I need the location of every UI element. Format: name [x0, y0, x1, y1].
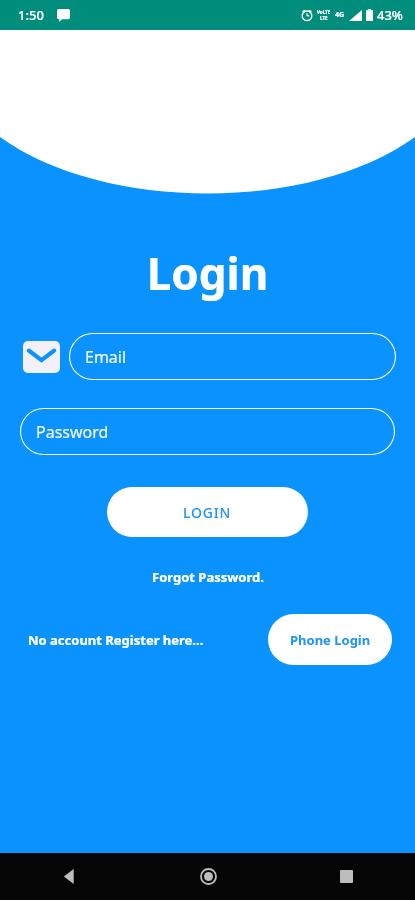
button[interactable]: Email [69, 333, 396, 380]
button[interactable]: No account Register here... [28, 625, 204, 655]
button[interactable]: Password [20, 408, 395, 455]
button[interactable]: Back [0, 853, 139, 900]
button[interactable]: Email [23, 341, 60, 373]
staticText: Phone Login [290, 631, 371, 649]
staticText: Email [85, 346, 127, 368]
button[interactable]: Home [139, 853, 277, 900]
staticText: 1:50 [18, 6, 44, 24]
button[interactable]: Forgot Password. [144, 564, 272, 590]
staticText: LOGIN [183, 503, 232, 522]
staticText: No account Register here... [28, 631, 204, 649]
staticText: Login [0, 243, 415, 303]
staticText: 43% [377, 6, 403, 24]
button[interactable]: Recent apps [277, 853, 415, 900]
staticText: VoLTE [317, 9, 331, 15]
button[interactable]: Phone Login [268, 614, 392, 665]
staticText: Forgot Password. [152, 568, 264, 586]
staticText: 4G [335, 10, 345, 20]
button[interactable]: LOGIN [107, 487, 308, 537]
staticText: Password [36, 421, 109, 443]
staticText: LTE [320, 15, 328, 21]
